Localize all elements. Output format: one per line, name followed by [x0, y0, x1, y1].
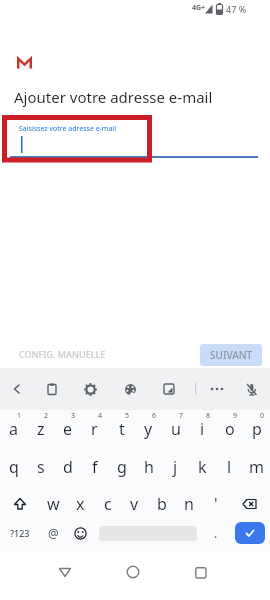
button[interactable]: y — [135, 410, 162, 447]
button[interactable]: g — [108, 447, 135, 486]
staticText: 2 — [44, 411, 49, 421]
staticText: u — [171, 418, 181, 440]
button[interactable]: x — [67, 486, 94, 522]
staticText: 4G+ — [192, 3, 206, 13]
button[interactable]: o — [216, 410, 243, 447]
button[interactable]: ?123 — [0, 522, 40, 544]
staticText: n — [184, 493, 194, 515]
button[interactable]: h — [135, 447, 162, 486]
button[interactable] — [0, 486, 40, 522]
staticText: b — [157, 493, 167, 515]
staticText: 0 — [260, 411, 265, 421]
staticText: f — [92, 456, 98, 478]
button[interactable]: u — [162, 410, 189, 447]
button[interactable]: r — [81, 410, 108, 447]
staticText: SUIVANT — [210, 348, 253, 362]
staticText: 5 — [125, 411, 130, 421]
staticText: Ajouter votre adresse e-mail — [14, 87, 213, 107]
staticText: 9 — [233, 411, 238, 421]
button[interactable]: b — [148, 486, 175, 522]
button[interactable]: m — [243, 447, 270, 486]
button[interactable] — [0, 368, 34, 410]
staticText: z — [37, 418, 45, 440]
staticText: q — [9, 456, 19, 478]
staticText: i — [200, 418, 205, 440]
button[interactable]: k — [189, 447, 216, 486]
button[interactable]: d — [54, 447, 81, 486]
button[interactable] — [150, 368, 188, 410]
button[interactable] — [117, 556, 149, 588]
staticText: g — [117, 456, 127, 478]
button[interactable]: n — [175, 486, 202, 522]
button[interactable]: ' — [202, 486, 229, 522]
staticText: 47 % — [226, 3, 247, 15]
button[interactable]: e — [54, 410, 81, 447]
staticText: ?123 — [10, 527, 30, 539]
staticText: 1 — [17, 411, 22, 421]
staticText: p — [252, 418, 262, 440]
staticText: w — [47, 493, 60, 515]
button[interactable] — [70, 368, 110, 410]
staticText: k — [198, 456, 207, 478]
staticText: x — [76, 493, 85, 515]
staticText: o — [225, 418, 235, 440]
staticText: c — [104, 493, 112, 515]
staticText: a — [9, 418, 18, 440]
button[interactable] — [94, 522, 202, 544]
staticText: j — [173, 456, 178, 478]
button[interactable]: f — [81, 447, 108, 486]
staticText: 8 — [206, 411, 211, 421]
staticText: v — [130, 493, 139, 515]
button[interactable]: t — [108, 410, 135, 447]
staticText: d — [63, 456, 73, 478]
button[interactable]: s — [27, 447, 54, 486]
staticText: ' — [214, 493, 218, 515]
staticText: y — [144, 418, 153, 440]
staticText: Saisissez votre adresse e-mail — [19, 124, 116, 134]
button[interactable]: i — [189, 410, 216, 447]
button[interactable] — [229, 486, 270, 522]
button[interactable]: p — [243, 410, 270, 447]
button[interactable]: a — [0, 410, 27, 447]
button[interactable] — [202, 368, 232, 410]
button[interactable]: v — [121, 486, 148, 522]
staticText: . — [214, 525, 218, 541]
button[interactable] — [232, 368, 270, 410]
button[interactable]: SUIVANT — [200, 344, 262, 366]
staticText: 3 — [71, 411, 76, 421]
staticText: 4 — [98, 411, 103, 421]
button[interactable]: c — [94, 486, 121, 522]
staticText: t — [119, 418, 125, 440]
button[interactable]: j — [162, 447, 189, 486]
button[interactable]: CONFIG. MANUELLE — [6, 342, 118, 366]
button[interactable] — [229, 522, 270, 544]
staticText: m — [249, 456, 264, 478]
button[interactable] — [110, 368, 150, 410]
button[interactable] — [67, 522, 94, 544]
button[interactable] — [184, 556, 216, 588]
button[interactable]: l — [216, 447, 243, 486]
staticText: @ — [48, 525, 59, 541]
staticText: h — [144, 456, 154, 478]
button[interactable] — [34, 368, 70, 410]
staticText: 7 — [179, 411, 184, 421]
button[interactable]: w — [40, 486, 67, 522]
staticText: CONFIG. MANUELLE — [19, 348, 106, 360]
staticText: e — [63, 418, 73, 440]
button[interactable]: . — [202, 522, 229, 544]
staticText: l — [227, 456, 232, 478]
button[interactable] — [15, 55, 33, 71]
button[interactable] — [49, 556, 81, 588]
button[interactable]: q — [0, 447, 27, 486]
staticText: s — [37, 456, 45, 478]
button[interactable]: @ — [40, 522, 67, 544]
button[interactable]: z — [27, 410, 54, 447]
staticText: r — [91, 418, 98, 440]
staticText: 6 — [152, 411, 157, 421]
